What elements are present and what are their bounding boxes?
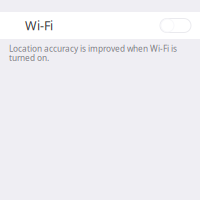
staticText: Wi-Fi bbox=[25, 17, 53, 34]
button[interactable]: Wi-Fi bbox=[0, 12, 200, 39]
staticText: Location accuracy is improved when Wi-Fi… bbox=[9, 43, 177, 63]
button[interactable]: Wi-Fi, off bbox=[160, 18, 191, 32]
